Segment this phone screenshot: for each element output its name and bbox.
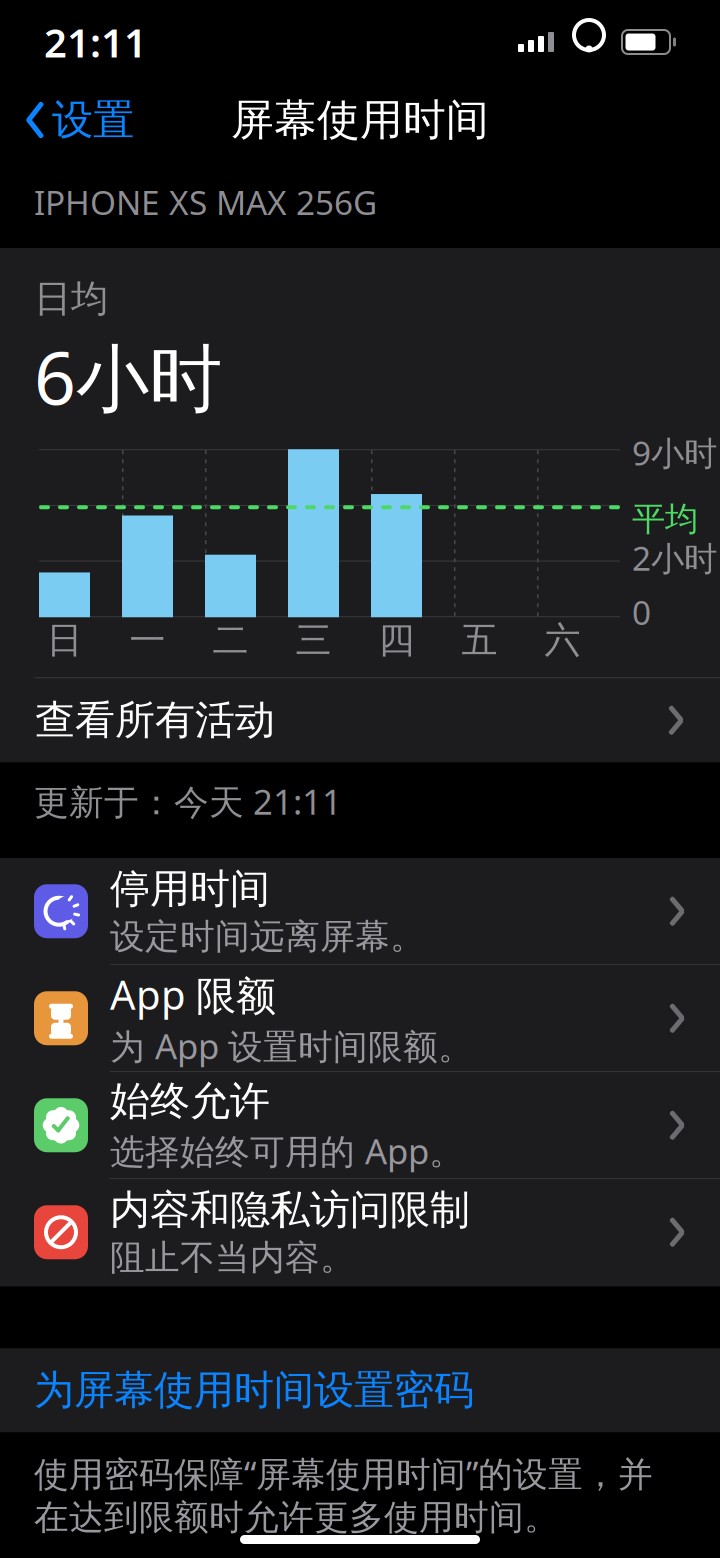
staticText: 一 — [129, 618, 165, 662]
staticText: 始终允许 — [110, 1077, 270, 1126]
staticText: 日 — [46, 618, 82, 662]
button[interactable]: 内容和隐私访问限制 — [0, 1179, 720, 1286]
button[interactable]: 查看所有活动 — [0, 678, 720, 762]
staticText: 内容和隐私访问限制 — [110, 1185, 470, 1234]
staticText: 为屏幕使用时间设置密码 — [34, 1366, 474, 1415]
staticText: 六 — [544, 618, 580, 662]
staticText: 6小时 — [34, 328, 222, 425]
staticText: 更新于：今天 21:11 — [34, 778, 342, 824]
button[interactable]: 为屏幕使用时间设置密码 — [0, 1348, 720, 1432]
button[interactable]: 设置 — [14, 87, 144, 153]
button[interactable]: 始终允许 — [0, 1072, 720, 1179]
staticText: 为 App 设置时间限额。 — [110, 1023, 473, 1069]
staticText: 二 — [212, 618, 248, 662]
staticText: 设置 — [52, 95, 134, 145]
staticText: 选择始终可用的 App。 — [110, 1128, 464, 1174]
staticText: 9小时 — [632, 430, 717, 475]
staticText: 三 — [295, 618, 331, 662]
staticText: 查看所有活动 — [35, 696, 275, 745]
staticText: 2小时 — [632, 536, 717, 580]
staticText: 四 — [378, 618, 414, 662]
button[interactable]: App 限额 — [0, 965, 720, 1072]
staticText: 屏幕使用时间 — [231, 94, 489, 146]
staticText: 五 — [461, 618, 497, 662]
staticText: 使用密码保障“屏幕使用时间”的设置，并在达到限额时允许更多使用时间。 — [34, 1450, 653, 1539]
staticText: IPHONE XS MAX 256G — [34, 180, 377, 224]
staticText: 停用时间 — [110, 864, 270, 913]
staticText: 0 — [632, 590, 651, 634]
staticText: 设定时间远离屏幕。 — [110, 915, 425, 958]
staticText: App 限额 — [110, 968, 276, 1021]
button[interactable]: 停用时间 — [0, 858, 720, 965]
staticText: 平均 — [632, 499, 698, 539]
staticText: 21:11 — [44, 15, 147, 68]
staticText: 日均 — [34, 276, 108, 322]
staticText: 阻止不当内容。 — [110, 1236, 355, 1279]
